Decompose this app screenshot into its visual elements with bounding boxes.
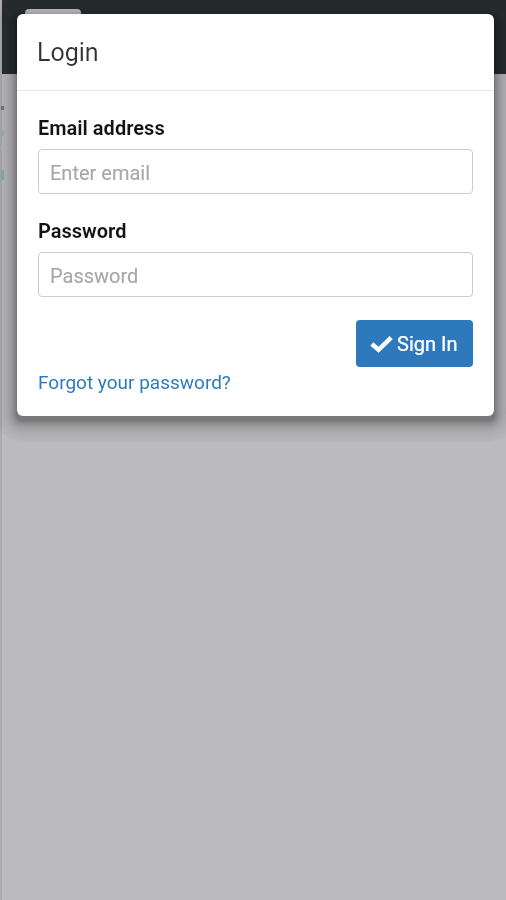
button[interactable]: Password xyxy=(38,252,473,297)
staticText: Login xyxy=(37,38,99,67)
button[interactable]: Enter email xyxy=(38,149,473,194)
button[interactable]: Forgot your password? xyxy=(38,371,231,393)
staticText: Enter email xyxy=(50,161,151,184)
staticText: Password xyxy=(50,264,139,287)
button[interactable]: Sign In xyxy=(356,320,473,367)
staticText: Password xyxy=(38,219,127,242)
staticText: Email address xyxy=(38,116,165,139)
staticText: Sign In xyxy=(397,332,458,355)
